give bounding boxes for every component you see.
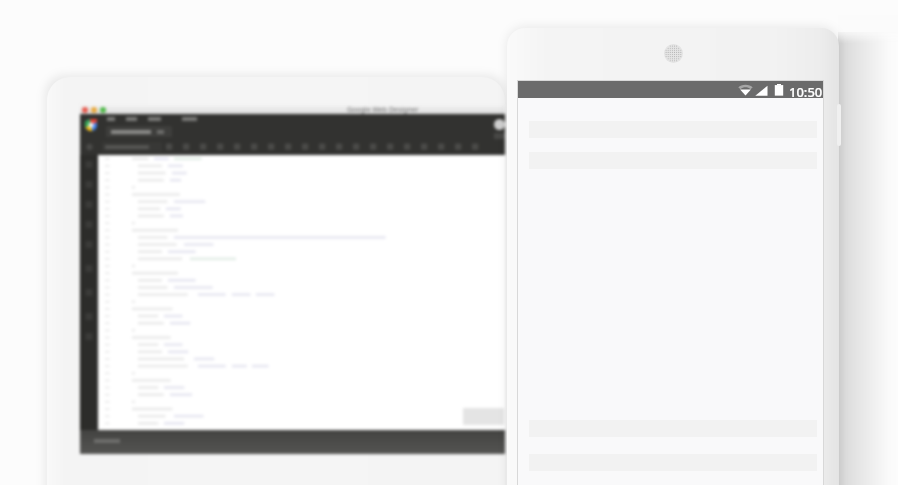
- button[interactable]: Browser tab: [106, 126, 172, 137]
- button[interactable]: Close window: [82, 107, 88, 113]
- staticText: Google Web Designer: [347, 105, 419, 114]
- button[interactable]: Maximize window: [100, 107, 106, 113]
- staticText: 10:50: [789, 83, 823, 100]
- button[interactable]: Minimize window: [91, 107, 97, 113]
